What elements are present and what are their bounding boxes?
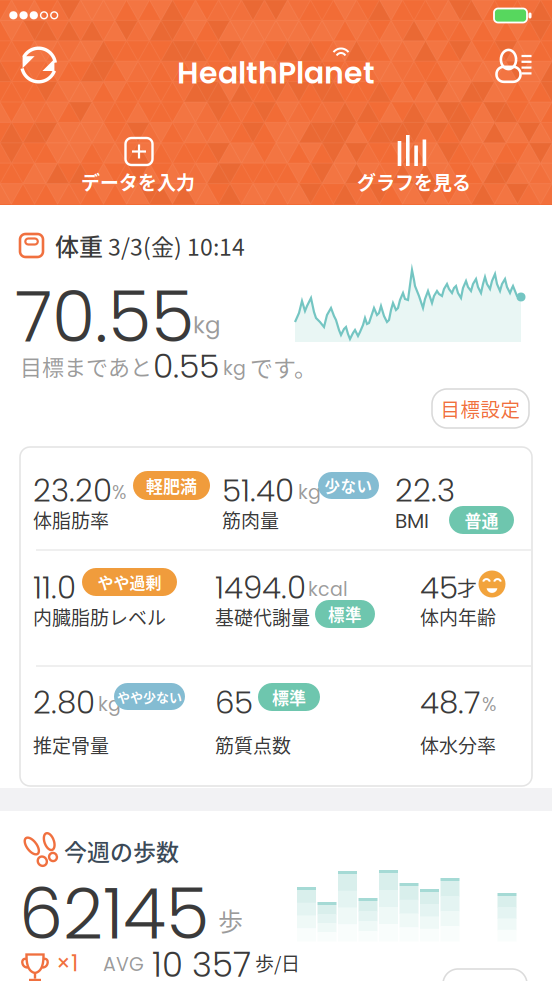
staticText: kcal xyxy=(308,576,348,603)
staticText: 体水分率 xyxy=(420,731,496,758)
staticText: ×1 xyxy=(56,947,78,979)
staticText: 推定骨量 xyxy=(33,731,109,758)
staticText: 歩 xyxy=(218,902,243,938)
staticText: 体内年齢 xyxy=(420,603,496,630)
staticText: データを入力 xyxy=(81,168,195,195)
staticText: BMI xyxy=(395,507,429,535)
staticText: 才 xyxy=(457,573,477,602)
staticText: 11.0 xyxy=(33,566,76,609)
staticText: 普通 xyxy=(464,508,498,532)
staticText: 体脂肪率 xyxy=(33,506,109,533)
staticText: グラフを見る xyxy=(357,168,471,195)
staticText: 軽肥満 xyxy=(146,473,197,498)
staticText: 48.7 xyxy=(420,681,481,724)
staticText: 目標まであと xyxy=(20,350,152,382)
staticText: 標準 xyxy=(272,685,306,709)
staticText: 22.3 xyxy=(395,469,455,512)
staticText: 2.80 xyxy=(33,681,95,724)
staticText: 45 xyxy=(420,566,458,609)
staticText: kg xyxy=(298,479,321,506)
staticText: 内臓脂肪レベル xyxy=(33,603,166,630)
staticText: 1494.0 xyxy=(215,566,306,609)
staticText: 62145 xyxy=(19,865,209,963)
staticText: kg xyxy=(98,691,121,718)
staticText: kg xyxy=(193,309,221,341)
staticText: kg xyxy=(223,355,246,382)
staticText: やや少ない xyxy=(117,687,182,706)
staticText: 標準 xyxy=(328,602,362,626)
staticText: です。 xyxy=(250,350,317,383)
staticText: 0.55 xyxy=(153,343,219,389)
staticText: 23.20 xyxy=(33,469,112,512)
staticText: HealthPlanet xyxy=(177,52,375,94)
staticText: 基礎代謝量 xyxy=(215,603,310,630)
staticText: 70.55 xyxy=(15,268,194,366)
staticText: 筋肉量 xyxy=(222,506,279,533)
staticText: 筋質点数 xyxy=(215,731,291,758)
staticText: % xyxy=(482,691,496,718)
staticText: 3/3(金) 10:14 xyxy=(108,229,245,262)
staticText: やや過剰 xyxy=(97,570,161,594)
staticText: 少ない xyxy=(324,474,372,497)
staticText: 歩/日 xyxy=(255,949,300,976)
staticText: AVG xyxy=(103,951,144,978)
staticText: 51.40 xyxy=(222,469,294,512)
staticText: 体重 xyxy=(55,228,103,263)
staticText: 65 xyxy=(215,681,253,724)
staticText: % xyxy=(112,479,126,506)
staticText: 今週の歩数 xyxy=(64,834,179,867)
staticText: 10 357 xyxy=(152,941,251,981)
staticText: 目標設定 xyxy=(440,394,520,423)
